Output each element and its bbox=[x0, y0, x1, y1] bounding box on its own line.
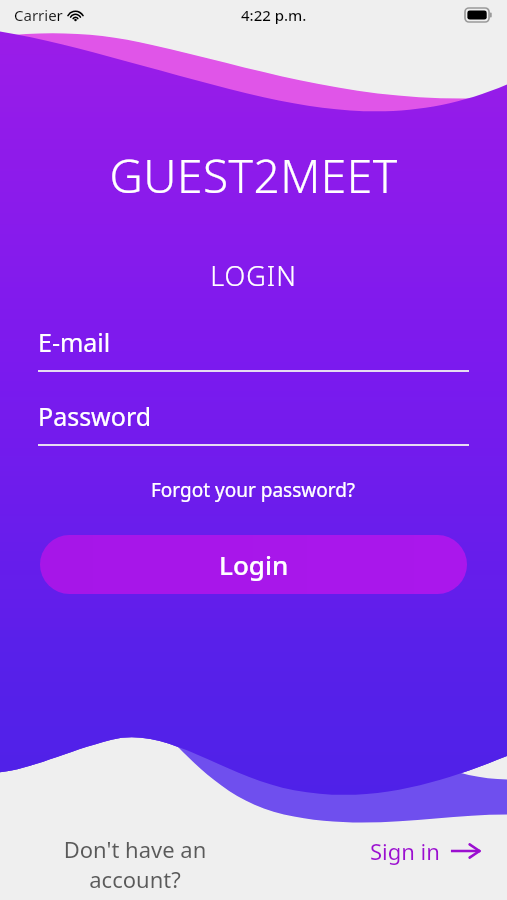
button[interactable]: Sign in bbox=[370, 834, 481, 866]
button[interactable]: Login bbox=[40, 535, 467, 594]
staticText: Login bbox=[219, 547, 289, 582]
staticText: GUEST2MEET bbox=[0, 144, 507, 207]
staticText: LOGIN bbox=[0, 257, 507, 294]
staticText: Password bbox=[38, 399, 152, 433]
button[interactable]: Password bbox=[38, 399, 469, 446]
staticText: Sign in bbox=[370, 836, 440, 866]
button[interactable]: E-mail bbox=[38, 325, 469, 372]
staticText: Forgot your password? bbox=[151, 477, 356, 503]
other: Sign in bbox=[451, 840, 481, 862]
staticText: 4:22 p.m. bbox=[241, 5, 307, 25]
staticText: E-mail bbox=[38, 325, 111, 359]
staticText: Don't have an account? bbox=[40, 834, 230, 894]
button[interactable]: Forgot your password? bbox=[0, 477, 507, 503]
staticText: Carrier bbox=[14, 5, 63, 25]
